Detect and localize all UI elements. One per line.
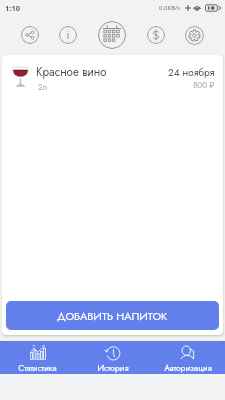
staticText: 24 ноября	[168, 65, 215, 79]
staticText: 0.0KB/s	[159, 4, 181, 12]
button[interactable]: Price	[147, 26, 165, 44]
staticText: Статистика	[18, 362, 57, 374]
button[interactable]: Статистика	[0, 341, 75, 374]
staticText: История	[97, 362, 129, 374]
button[interactable]: Settings	[185, 26, 204, 45]
staticText: Авторизация	[164, 362, 212, 374]
button[interactable]: Share	[21, 26, 39, 44]
button[interactable]: Красное вино	[2, 55, 223, 101]
button[interactable]: Calendar	[98, 21, 126, 49]
staticText: 800 ₽	[193, 79, 215, 91]
button[interactable]: Info	[59, 26, 77, 44]
button[interactable]: История	[75, 341, 150, 374]
staticText: 2л	[38, 81, 48, 93]
staticText: ДОБАВИТЬ НАПИТОК	[57, 308, 168, 324]
staticText: 1:10	[5, 3, 20, 13]
staticText: Красное вино	[36, 64, 107, 81]
button[interactable]: Авторизация	[150, 341, 225, 374]
button[interactable]: ДОБАВИТЬ НАПИТОК	[6, 301, 219, 330]
